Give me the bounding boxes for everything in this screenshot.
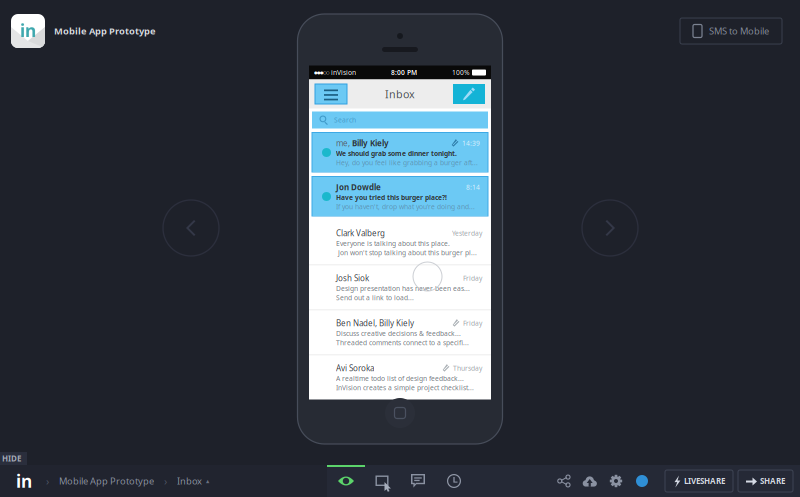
staticText: Discuss creative decisions & feedback... (336, 329, 461, 338)
staticText: We should grab some dinner tonight. (336, 149, 457, 158)
button[interactable]: Avi Soroka (309, 355, 491, 399)
staticText: InVision creates a simple project checkl… (336, 383, 474, 392)
staticText: inVision (329, 68, 356, 77)
button[interactable]: LIVESHARE (665, 470, 733, 492)
button[interactable]: Previous screen (162, 199, 220, 257)
button[interactable]: Settings (603, 465, 629, 497)
button[interactable]: History (436, 465, 472, 497)
staticText: SMS to Mobile (709, 25, 769, 37)
staticText: Ben Nadel, Billy Kiely (336, 318, 414, 328)
staticText: 8:00 PM (391, 68, 417, 77)
staticText: Friday (463, 274, 482, 283)
staticText: A realtime todo list of design feedback.… (336, 374, 464, 383)
staticText: in (16, 469, 32, 492)
staticText: Everyone is talking about this place. (336, 239, 450, 248)
staticText: Search (334, 116, 356, 124)
button[interactable]: Ben Nadel, Billy Kiely (309, 310, 491, 354)
staticText: › (46, 474, 49, 488)
button[interactable]: Share link (551, 465, 577, 497)
button[interactable]: Search (312, 111, 488, 128)
button[interactable]: Account (629, 465, 655, 497)
button[interactable]: Sync (577, 465, 603, 497)
staticText: Jon Dowdle (336, 182, 381, 192)
button[interactable]: Josh Siok (309, 265, 491, 309)
button[interactable]: Clark Valberg (309, 220, 491, 264)
staticText: Send out a link to load... (336, 293, 414, 302)
staticText: ▴ (206, 477, 209, 485)
staticText: Mobile App Prototype (59, 475, 154, 487)
staticText: Yesterday (452, 229, 482, 238)
staticText: Mobile App Prototype (54, 25, 156, 37)
button[interactable]: Menu (315, 84, 347, 104)
staticText: Thursday (453, 364, 482, 373)
staticText: Josh Siok (336, 273, 369, 283)
staticText: Design presentation has never been eas..… (336, 284, 470, 293)
staticText: Inbox (177, 475, 202, 487)
staticText: 8:14 (466, 183, 480, 192)
button[interactable]: HIDE (0, 452, 27, 465)
button[interactable]: Inbox (177, 465, 209, 497)
staticText: › (164, 474, 167, 488)
staticText: Clark Valberg (336, 228, 385, 238)
staticText: Avi Soroka (336, 363, 374, 373)
staticText: Have you tried this burger place?! (336, 193, 447, 202)
button[interactable]: SHARE (738, 470, 793, 492)
button[interactable]: Chat (400, 465, 436, 497)
staticText: LIVESHARE (684, 476, 725, 486)
staticText: 100% (452, 68, 470, 77)
staticText: me, (336, 138, 352, 148)
staticText: ●●●○○ (314, 70, 329, 75)
staticText: Friday (463, 319, 482, 328)
button[interactable]: SMS to Mobile (680, 18, 782, 44)
button[interactable]: Mobile App Prototype (59, 465, 154, 497)
staticText: SHARE (760, 476, 785, 486)
staticText: If you haven't, drop what you're doing a… (336, 202, 475, 211)
staticText: Inbox (385, 87, 415, 101)
button[interactable]: Comment (364, 465, 400, 497)
staticText: 14:39 (462, 139, 480, 148)
button[interactable]: InVision home (12, 465, 36, 497)
button[interactable]: Preview (328, 465, 364, 497)
staticText: Jon won't stop talking about this burger… (336, 248, 477, 257)
staticText: Billy Kiely (352, 138, 389, 148)
button[interactable]: me, (312, 132, 488, 172)
button[interactable]: Jon Dowdle (312, 176, 488, 216)
staticText: HIDE (2, 453, 21, 464)
staticText: Hey, do you feel like grabbing a burger … (336, 158, 478, 167)
staticText: in (20, 19, 36, 42)
staticText: Threaded comments connect to a specifi..… (336, 338, 469, 347)
button[interactable]: Next screen (581, 199, 639, 257)
button[interactable]: Compose (453, 84, 485, 104)
